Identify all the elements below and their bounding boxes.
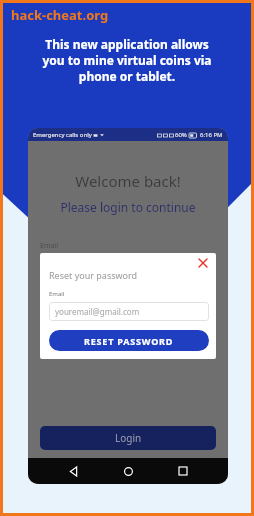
staticText: hack-cheat.org bbox=[11, 6, 109, 24]
staticText: 6:16 PM bbox=[200, 131, 223, 139]
staticText: Reset your password bbox=[49, 269, 138, 281]
button[interactable] bbox=[40, 255, 216, 277]
staticText: RESET PASSWORD bbox=[84, 335, 174, 347]
staticText: Please login to continue bbox=[28, 199, 228, 215]
button[interactable] bbox=[40, 313, 216, 335]
staticText: Welcome back! bbox=[28, 171, 228, 191]
staticText: 60% bbox=[175, 131, 187, 139]
button[interactable]: Forgot password? bbox=[40, 340, 107, 351]
button[interactable]: youremail@gmail.com bbox=[55, 302, 203, 321]
button[interactable]: Back bbox=[63, 461, 83, 481]
staticText: Email bbox=[49, 290, 65, 298]
button[interactable]: Home bbox=[118, 461, 138, 481]
staticText: This new application allows you to mine … bbox=[17, 36, 237, 84]
button[interactable]: Login bbox=[40, 426, 216, 450]
staticText: Login bbox=[115, 431, 142, 445]
button[interactable]: Close bbox=[197, 257, 209, 269]
button[interactable]: RESET PASSWORD bbox=[49, 330, 209, 351]
staticText: Email bbox=[40, 241, 58, 251]
staticText: youremail@gmail.com bbox=[55, 306, 140, 317]
staticText: Emergency calls only bbox=[33, 131, 92, 139]
button[interactable]: Recents bbox=[173, 461, 193, 481]
